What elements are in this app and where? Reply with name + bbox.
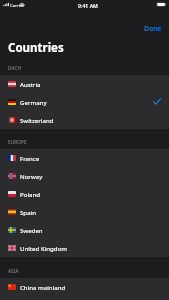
staticText: France (20, 154, 40, 162)
staticText: Poland (20, 190, 40, 198)
staticText: United Kingdom (20, 244, 68, 252)
button[interactable]: Poland (0, 185, 169, 203)
button[interactable]: Germany (0, 93, 169, 111)
staticText: DACH (8, 65, 22, 71)
staticText: Carrier (10, 2, 25, 8)
button[interactable]: Switzerland (0, 111, 169, 129)
button[interactable]: Norway (0, 167, 169, 185)
staticText: EUROPE (8, 139, 27, 145)
staticText: 9:41 AM (78, 2, 98, 9)
staticText: Spain (20, 208, 36, 216)
button[interactable]: Spain (0, 203, 169, 221)
staticText: Done (144, 24, 162, 33)
staticText: Austria (20, 80, 41, 88)
button[interactable]: Sweden (0, 221, 169, 239)
staticText: Countries (8, 40, 64, 56)
staticText: ASIA (8, 268, 19, 274)
button[interactable]: France (0, 149, 169, 167)
staticText: China mainland (20, 283, 66, 291)
button[interactable]: China mainland (0, 278, 169, 296)
staticText: Sweden (20, 226, 43, 234)
button[interactable]: United Kingdom (0, 239, 169, 257)
staticText: Switzerland (20, 116, 54, 124)
button[interactable]: Austria (0, 75, 169, 93)
button[interactable]: Done (138, 21, 168, 36)
staticText: Germany (20, 98, 47, 106)
staticText: Norway (20, 172, 43, 180)
